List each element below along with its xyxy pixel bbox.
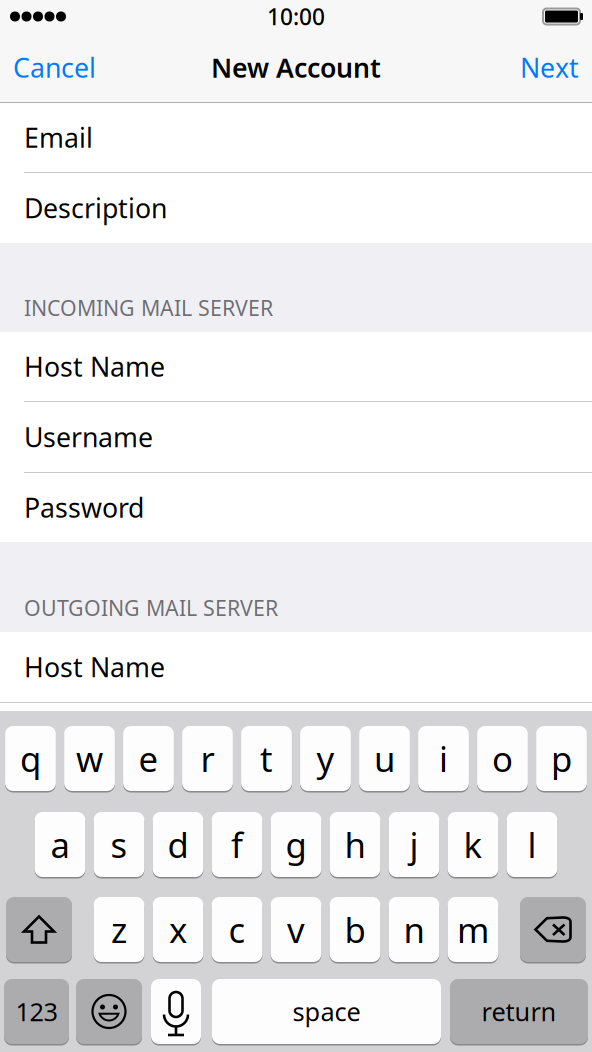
staticText: 10:00 [267,1,325,31]
button[interactable]: Description [0,173,592,243]
staticText: o [492,735,513,781]
staticText: Host Name [24,349,165,384]
staticText: f [231,821,243,867]
staticText: y [316,735,334,781]
button[interactable]: Delete [520,897,586,962]
button[interactable]: v [271,897,321,962]
button[interactable]: b [330,897,380,962]
button[interactable]: Shift [6,897,72,962]
staticText: m [457,906,489,952]
button[interactable]: return [450,979,588,1044]
button[interactable]: a [35,812,85,877]
button[interactable]: Next [502,38,579,97]
button[interactable]: Dictation [151,979,201,1044]
button[interactable]: f [212,812,262,877]
staticText: Email [24,120,93,155]
staticText: 123 [15,995,57,1028]
staticText: p [551,735,572,781]
staticText: x [169,906,187,952]
button[interactable]: r [182,726,233,791]
staticText: OUTGOING MAIL SERVER [24,594,278,622]
staticText: w [76,735,103,781]
button[interactable]: h [330,812,380,877]
staticText: t [260,735,273,781]
button[interactable]: k [448,812,498,877]
staticText: d [167,821,188,867]
staticText: i [439,735,448,781]
button[interactable]: g [271,812,321,877]
button[interactable]: q [5,726,56,791]
button[interactable]: Host Name [0,332,592,402]
button[interactable]: i [418,726,469,791]
button[interactable]: Host Name [0,632,592,702]
staticText: h [344,821,365,867]
staticText: c [228,906,245,952]
staticText: b [344,906,365,952]
button[interactable]: space [212,979,441,1044]
button[interactable]: Email [0,103,592,173]
staticText: Host Name [24,649,165,685]
staticText: return [481,995,556,1028]
staticText: q [20,735,41,781]
button[interactable]: w [64,726,115,791]
button[interactable]: t [241,726,292,791]
staticText: k [463,821,482,867]
staticText: Cancel [13,50,96,85]
staticText: z [111,906,127,952]
button[interactable]: p [536,726,587,791]
staticText: v [287,906,305,952]
button[interactable]: e [123,726,174,791]
staticText: Password [24,490,144,525]
button[interactable]: Emoji [76,979,142,1044]
staticText: e [138,735,158,781]
button[interactable]: d [153,812,203,877]
button[interactable]: Cancel [13,38,114,97]
staticText: g [285,821,306,867]
button[interactable]: 123 [4,979,69,1044]
staticText: l [527,821,536,867]
button[interactable]: c [212,897,262,962]
staticText: space [292,995,360,1028]
button[interactable]: j [389,812,439,877]
staticText: Username [24,419,153,455]
button[interactable]: o [477,726,528,791]
staticText: a [50,821,69,867]
staticText: n [403,906,424,952]
staticText: Next [520,50,579,85]
button[interactable]: z [94,897,144,962]
staticText: j [409,821,418,867]
button[interactable]: l [507,812,557,877]
button[interactable]: x [153,897,203,962]
button[interactable]: s [94,812,144,877]
button[interactable]: m [448,897,498,962]
staticText: u [374,735,395,781]
button[interactable]: Password [0,473,592,542]
staticText: INCOMING MAIL SERVER [24,294,273,322]
button[interactable]: Username [0,402,592,473]
staticText: r [200,735,214,781]
staticText: New Account [211,50,381,85]
button[interactable]: n [389,897,439,962]
staticText: s [110,821,127,867]
button[interactable]: y [300,726,351,791]
button[interactable]: u [359,726,410,791]
staticText: Description [24,190,167,226]
